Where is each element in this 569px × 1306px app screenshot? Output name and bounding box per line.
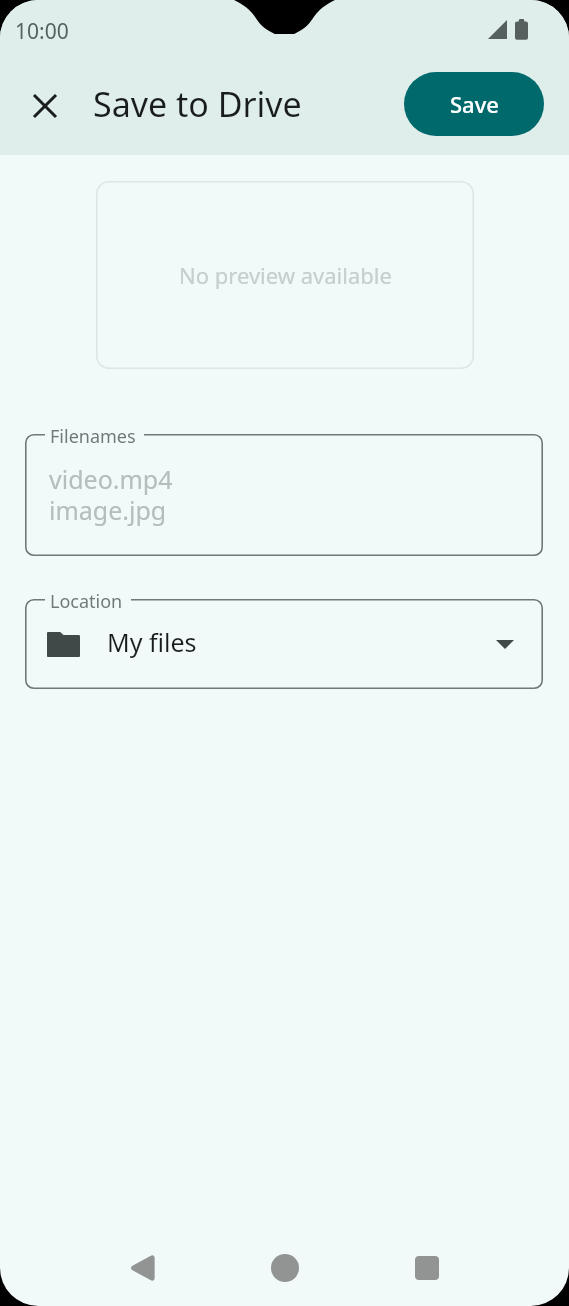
staticText: Location <box>50 589 123 614</box>
button[interactable]: My files <box>25 599 543 689</box>
button[interactable]: Close <box>21 82 69 130</box>
staticText: No preview available <box>179 260 392 290</box>
button[interactable]: Back <box>110 1236 174 1300</box>
staticText: 10:00 <box>15 17 69 46</box>
staticText: My files <box>107 625 197 659</box>
button[interactable]: video.mp4 image.jpg <box>25 434 543 556</box>
button[interactable]: Save <box>404 72 544 136</box>
button[interactable]: Recent apps <box>395 1236 459 1300</box>
staticText: Filenames <box>50 424 136 449</box>
staticText: Save to Drive <box>93 81 302 127</box>
staticText: Save <box>450 89 499 119</box>
button[interactable]: Home <box>253 1236 317 1300</box>
